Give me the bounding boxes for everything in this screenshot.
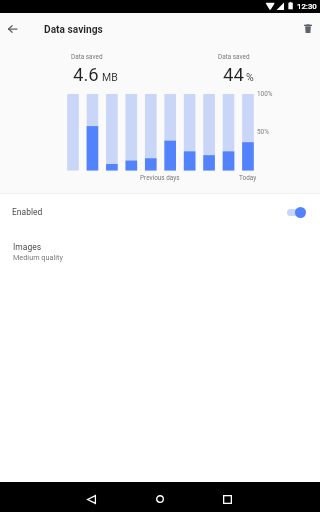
- button[interactable]: Enabled: [0, 194, 320, 232]
- staticText: 4.6: [73, 64, 99, 86]
- button[interactable]: Images: [0, 232, 320, 267]
- button[interactable]: Home: [147, 486, 173, 512]
- staticText: Enabled: [12, 207, 43, 217]
- button[interactable]: Back: [78, 486, 104, 512]
- button[interactable]: Delete: [298, 19, 317, 38]
- button[interactable]: Back: [3, 19, 22, 38]
- staticText: Medium quality: [13, 253, 63, 262]
- staticText: Images: [13, 242, 42, 252]
- staticText: Data saved: [218, 53, 250, 61]
- staticText: MB: [102, 71, 118, 83]
- staticText: Data savings: [44, 24, 103, 36]
- staticText: 50%: [257, 128, 269, 136]
- staticText: 100%: [257, 90, 273, 98]
- staticText: 44: [223, 64, 244, 86]
- button[interactable]: Recents: [214, 486, 240, 512]
- staticText: 12:30: [297, 2, 317, 11]
- staticText: Data saved: [71, 53, 103, 61]
- staticText: Previous days: [140, 174, 180, 182]
- staticText: Today: [239, 174, 257, 182]
- staticText: %: [246, 71, 254, 83]
